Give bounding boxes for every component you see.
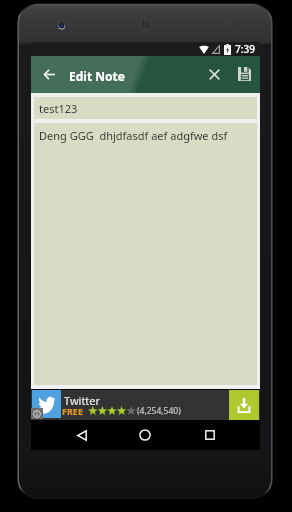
button[interactable]: Home — [134, 420, 156, 450]
button[interactable]: Twitter — [31, 390, 260, 420]
button[interactable]: Recents — [199, 420, 221, 450]
staticText: 7:39 — [235, 42, 255, 56]
button[interactable]: Save — [233, 63, 255, 85]
staticText: (4,254,540) — [137, 405, 181, 417]
staticText: test123 — [39, 101, 78, 116]
staticText: Twitter — [64, 393, 101, 408]
button[interactable]: Back — [38, 63, 60, 85]
staticText: Edit Note — [69, 68, 125, 84]
staticText: Deng GGG dhjdfasdf aef adgfwe dsf — [39, 128, 228, 143]
button[interactable]: Discard — [203, 63, 225, 85]
staticText: FREE — [62, 405, 83, 417]
button[interactable]: Install — [229, 390, 259, 420]
button[interactable]: Back — [71, 420, 93, 450]
